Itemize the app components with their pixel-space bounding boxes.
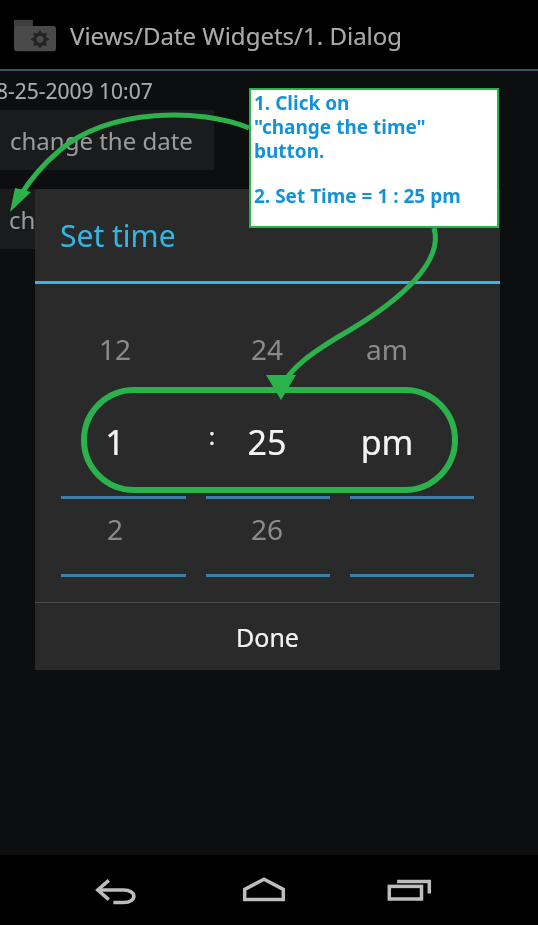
staticText: 25 [187,419,347,465]
staticText: am [307,330,467,368]
staticText: change the date [10,124,193,157]
staticText: change the time [9,203,193,236]
staticText: 12 [35,330,195,368]
staticText: 1 [35,419,195,465]
button[interactable]: change the date [0,110,214,170]
button[interactable]: change the time [0,189,214,249]
staticText: 8-25-2009 10:07 [0,77,153,106]
staticText: pm [307,419,467,465]
staticText: 2 [35,510,195,548]
staticText: Set time [60,215,176,256]
staticText: 2. Set Time = 1 : 25 pm [254,183,461,209]
button[interactable]: Back [80,855,156,925]
button[interactable]: Home [226,855,302,925]
staticText: : [203,419,221,452]
staticText: Done [236,620,299,654]
staticText: 1. Click on "change the time" button. [254,90,426,163]
staticText: Views/Date Widgets/1. Dialog [70,19,403,52]
staticText: 26 [187,510,347,548]
button[interactable]: Recent apps [372,855,448,925]
button[interactable]: Done [35,603,500,670]
staticText: 24 [187,330,347,368]
